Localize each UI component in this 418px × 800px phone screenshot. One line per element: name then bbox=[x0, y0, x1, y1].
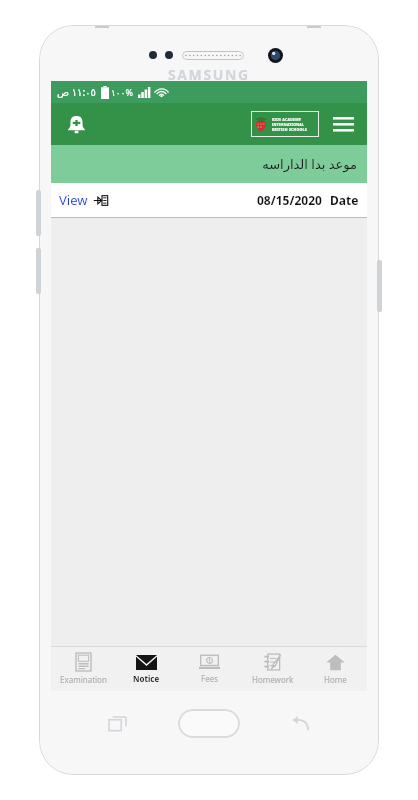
staticText: Homework bbox=[252, 674, 294, 685]
staticText: ١١:٠٥ ص bbox=[57, 85, 96, 99]
button[interactable]: View bbox=[51, 183, 367, 217]
staticText: موعد بدا الداراسه bbox=[262, 155, 357, 173]
button[interactable]: View bbox=[59, 191, 108, 209]
button[interactable]: Add notification bbox=[59, 107, 93, 141]
staticText: View bbox=[59, 191, 88, 209]
button[interactable]: Fees bbox=[178, 647, 241, 691]
button[interactable]: Menu bbox=[325, 106, 361, 142]
button[interactable]: Homework bbox=[241, 647, 304, 691]
staticText: BRITISH SCHOOLS bbox=[272, 127, 307, 132]
staticText: Date bbox=[330, 192, 359, 208]
button[interactable]: Examination bbox=[51, 647, 115, 691]
button[interactable]: Home bbox=[304, 647, 367, 691]
staticText: SAMSUNG bbox=[168, 65, 250, 84]
staticText: Fees bbox=[201, 673, 219, 684]
staticText: Examination bbox=[60, 674, 107, 685]
staticText: Notice bbox=[133, 673, 160, 684]
button[interactable]: Notice bbox=[115, 647, 178, 691]
staticText: ١٠٠% bbox=[111, 86, 133, 98]
staticText: 08/15/2020 bbox=[257, 192, 322, 208]
staticText: KIDS ACADEMY bbox=[272, 117, 302, 122]
staticText: Home bbox=[324, 674, 347, 685]
staticText: INTERNATIONAL bbox=[272, 122, 305, 127]
button[interactable]: School logo bbox=[251, 111, 319, 137]
